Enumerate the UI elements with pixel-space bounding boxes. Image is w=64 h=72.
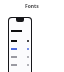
- button[interactable]: [9, 37, 31, 45]
- button[interactable]: [9, 61, 31, 69]
- button[interactable]: [9, 53, 31, 61]
- staticText: Fonts: [25, 3, 39, 10]
- button[interactable]: [9, 45, 31, 53]
